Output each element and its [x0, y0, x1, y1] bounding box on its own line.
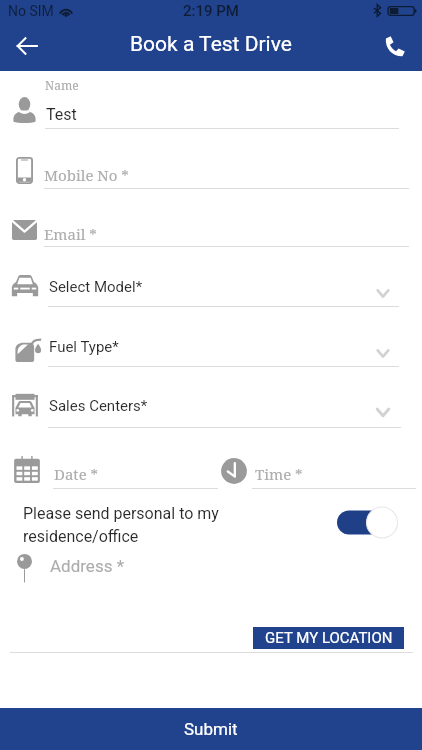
- other: Car model: [11, 275, 39, 298]
- other: Pick date: [13, 456, 41, 484]
- staticText: Book a Test Drive: [130, 32, 292, 57]
- other: Name field: [13, 97, 36, 123]
- button[interactable]: Expand: [371, 400, 395, 424]
- staticText: Time *: [255, 464, 303, 484]
- staticText: No SIM: [8, 3, 54, 19]
- staticText: Please send personal to my residence/off…: [23, 504, 219, 546]
- button[interactable]: Submit: [0, 708, 422, 750]
- other: Sales center: [11, 392, 39, 418]
- button[interactable]: GET MY LOCATION: [253, 627, 404, 649]
- button[interactable]: Send personal to my residence: [336, 505, 399, 540]
- staticText: 2:19 PM: [183, 2, 239, 20]
- other: Address: [17, 553, 32, 583]
- staticText: Email *: [44, 224, 97, 244]
- staticText: Sales Centers*: [49, 397, 148, 415]
- staticText: GET MY LOCATION: [265, 629, 393, 647]
- staticText: Name: [45, 77, 79, 93]
- other: Email: [12, 220, 37, 240]
- staticText: Date *: [54, 464, 99, 484]
- button[interactable]: Expand: [372, 342, 394, 364]
- staticText: Submit: [184, 719, 238, 739]
- staticText: Test: [46, 105, 77, 124]
- other: Fuel type: [14, 336, 42, 362]
- other: Mobile number: [16, 157, 33, 184]
- button[interactable]: Back: [3, 22, 51, 70]
- staticText: Mobile No *: [44, 165, 129, 185]
- other: Pick time: [220, 457, 248, 485]
- staticText: Select Model*: [49, 278, 143, 296]
- staticText: Fuel Type*: [49, 338, 119, 356]
- button[interactable]: Call: [371, 22, 419, 70]
- staticText: Address *: [50, 556, 124, 576]
- button[interactable]: Expand: [372, 282, 394, 304]
